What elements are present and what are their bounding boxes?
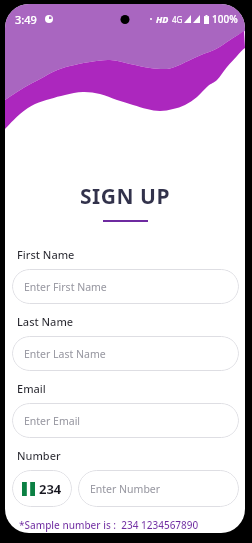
button[interactable]: Enter Last Name (12, 336, 239, 371)
staticText: SIGN UP (5, 182, 245, 211)
staticText: Email (17, 381, 46, 396)
staticText: 100% (212, 12, 238, 26)
staticText: 234 (39, 480, 62, 498)
staticText: 3:49 (15, 12, 37, 27)
staticText: *Sample number is : 234 1234567890 (19, 518, 199, 532)
staticText: Enter Email (24, 414, 81, 428)
button[interactable]: Enter Email (12, 403, 239, 438)
staticText: Enter Number (90, 482, 161, 496)
button[interactable]: Enter Number (78, 470, 239, 507)
staticText: HD (156, 13, 169, 25)
staticText: 4G (172, 14, 183, 25)
staticText: Number (17, 448, 61, 463)
staticText: Enter Last Name (24, 347, 106, 361)
staticText: Last Name (17, 314, 74, 329)
button[interactable]: 234 (12, 470, 72, 507)
button[interactable]: Enter First Name (12, 269, 239, 304)
staticText: Enter First Name (24, 280, 107, 294)
staticText: First Name (17, 247, 75, 262)
